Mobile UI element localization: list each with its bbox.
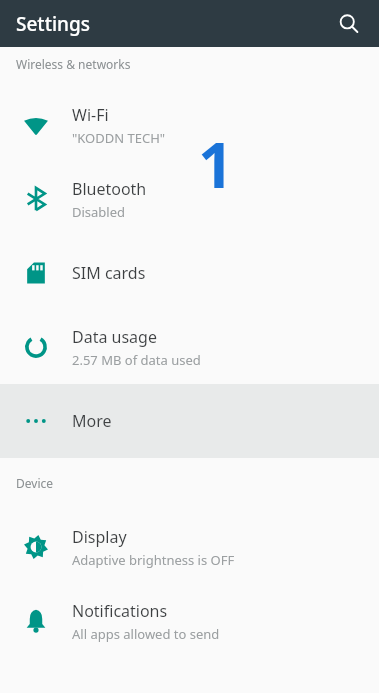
button[interactable]: More <box>0 384 379 458</box>
button[interactable]: Wi-Fi <box>0 88 379 162</box>
staticText: "KODDN TECH" <box>72 129 166 147</box>
button[interactable]: Notifications <box>0 584 379 658</box>
button[interactable]: SIM cards <box>0 236 379 310</box>
staticText: Disabled <box>72 203 126 221</box>
button[interactable]: Display <box>0 510 379 584</box>
staticText: All apps allowed to send <box>72 625 220 643</box>
staticText: Wi-Fi <box>72 104 109 126</box>
button[interactable]: Search <box>327 2 371 46</box>
staticText: Data usage <box>72 326 157 348</box>
staticText: Wireless & networks <box>16 56 131 72</box>
staticText: Settings <box>16 11 90 37</box>
staticText: Notifications <box>72 600 168 622</box>
staticText: 1 <box>198 122 234 206</box>
staticText: Device <box>16 475 54 491</box>
staticText: More <box>72 410 112 432</box>
staticText: SIM cards <box>72 262 146 284</box>
staticText: Display <box>72 526 127 548</box>
staticText: Adaptive brightness is OFF <box>72 551 235 569</box>
button[interactable]: Data usage <box>0 310 379 384</box>
staticText: Bluetooth <box>72 178 147 200</box>
button[interactable]: Bluetooth <box>0 162 379 236</box>
staticText: 2.57 MB of data used <box>72 351 201 369</box>
